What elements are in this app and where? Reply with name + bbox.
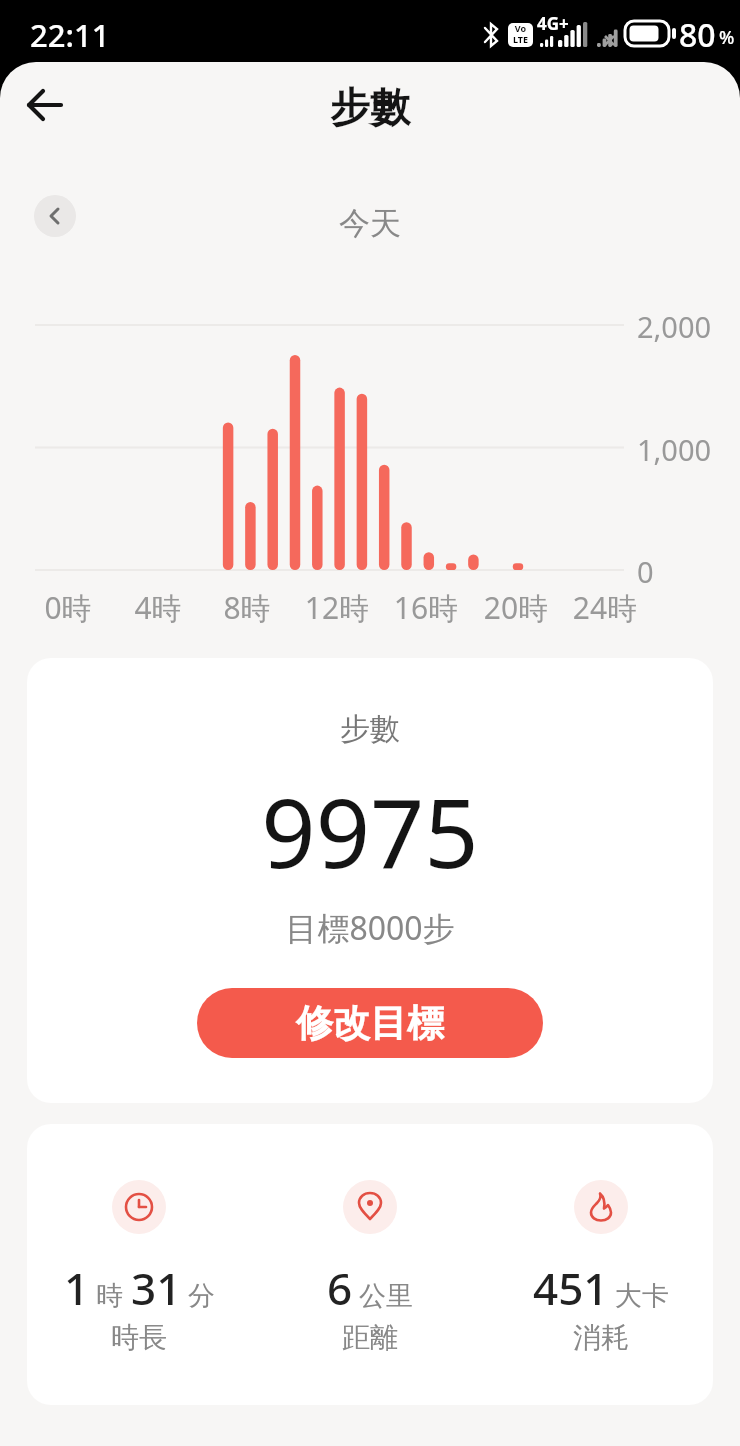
- staticText: 31: [131, 1258, 182, 1316]
- staticText: 20時: [466, 587, 566, 628]
- staticText: %: [719, 25, 735, 50]
- staticText: 4G+: [537, 12, 569, 35]
- staticText: 4時: [108, 587, 208, 628]
- staticText: 80: [679, 13, 716, 57]
- staticText: 今天: [0, 204, 740, 243]
- staticText: 0: [637, 552, 654, 591]
- staticText: 1,000: [637, 430, 712, 469]
- staticText: 步數: [0, 82, 740, 132]
- staticText: 0時: [18, 587, 118, 628]
- staticText: 24時: [555, 587, 655, 628]
- staticText: 修改目標: [296, 1000, 444, 1047]
- staticText: 451: [533, 1258, 609, 1316]
- staticText: Vo LTE: [508, 22, 533, 45]
- staticText: 9975: [27, 766, 713, 895]
- staticText: 1: [64, 1258, 90, 1316]
- staticText: 大卡: [615, 1279, 669, 1313]
- button[interactable]: [16, 76, 74, 134]
- staticText: 距離: [260, 1320, 480, 1355]
- staticText: 22:11: [30, 14, 110, 56]
- staticText: 分: [188, 1279, 215, 1313]
- staticText: 6: [327, 1258, 353, 1316]
- staticText: 步數: [27, 710, 713, 748]
- button[interactable]: 修改目標: [197, 988, 543, 1058]
- staticText: 目標8000步: [27, 906, 713, 950]
- staticText: 2,000: [637, 307, 712, 346]
- staticText: 8時: [197, 587, 297, 628]
- staticText: 16時: [376, 587, 476, 628]
- staticText: 時長: [29, 1320, 249, 1355]
- staticText: 公里: [359, 1279, 413, 1313]
- staticText: 消耗: [491, 1320, 711, 1355]
- button[interactable]: [34, 195, 76, 237]
- staticText: 時: [96, 1279, 123, 1313]
- staticText: 12時: [287, 587, 387, 628]
